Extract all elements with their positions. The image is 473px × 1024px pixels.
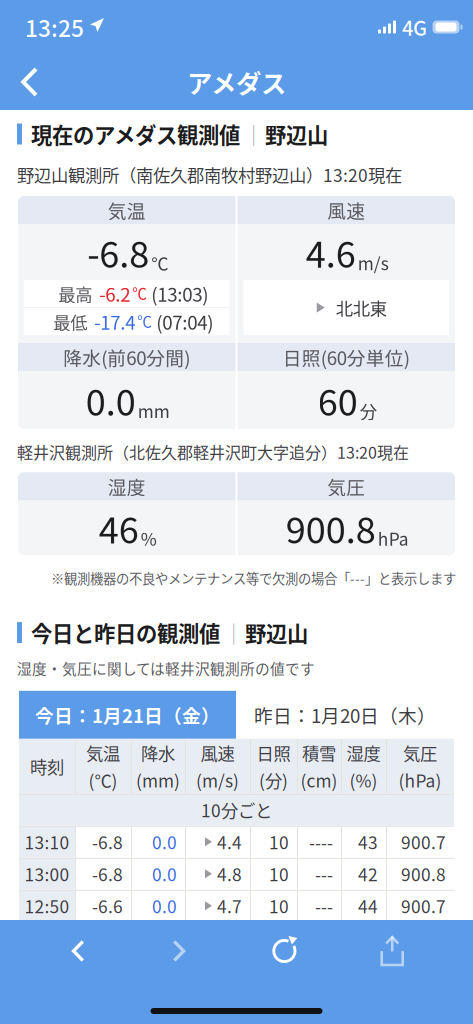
staticText: アメダス <box>187 64 286 100</box>
staticText: 13:25 <box>25 11 84 43</box>
staticText: (hPa) <box>398 767 441 792</box>
button[interactable]: 昨日：1月20日（木） <box>236 691 454 739</box>
staticText: 42 <box>358 861 378 886</box>
staticText: 野辺山 <box>245 617 308 648</box>
staticText: (13:03) <box>151 280 208 307</box>
staticText: 日照(60分単位) <box>283 344 410 371</box>
staticText: 4.7 <box>217 893 242 918</box>
staticText: 風速 <box>327 197 365 224</box>
staticText: (07:04) <box>156 308 213 335</box>
staticText: ℃ <box>151 250 168 275</box>
staticText: 気圧 <box>327 473 365 500</box>
staticText: mm <box>138 398 170 423</box>
staticText: 野辺山 <box>265 119 328 149</box>
staticText: 12:50 <box>24 893 69 918</box>
staticText: 野辺山観測所（南佐久郡南牧村野辺山）13:20現在 <box>17 162 402 187</box>
button[interactable]: 今日：1月21日（金） <box>19 691 236 739</box>
staticText: 13:10 <box>24 829 69 854</box>
staticText: 46 <box>99 502 139 554</box>
staticText: 今日と昨日の観測値 <box>31 617 220 648</box>
staticText: -6.8 <box>92 861 123 886</box>
staticText: 10 <box>269 829 289 854</box>
staticText: 0.0 <box>152 829 177 854</box>
staticText: ℃ <box>132 282 147 303</box>
staticText: (cm) <box>300 767 337 792</box>
staticText: -6.6 <box>92 893 123 918</box>
staticText: 気圧 <box>403 740 437 765</box>
staticText: 43 <box>358 829 378 854</box>
staticText: 最低 <box>53 309 87 334</box>
staticText: hPa <box>378 526 409 551</box>
staticText: 0.0 <box>86 374 136 426</box>
staticText: 0.0 <box>152 861 177 886</box>
staticText: 湿度 <box>346 740 380 765</box>
staticText: ※観測機器の不良やメンテナンス等で欠測の場合「---」と表示します <box>51 568 456 588</box>
staticText: -6.2 <box>99 280 130 307</box>
staticText: 44 <box>358 893 378 918</box>
button[interactable]: 進む <box>157 925 202 976</box>
staticText: 10 <box>269 893 289 918</box>
staticText: % <box>141 526 157 551</box>
staticText: -6.8 <box>87 226 149 278</box>
button[interactable]: 戻る <box>56 925 101 976</box>
staticText: 降水 <box>141 740 175 765</box>
staticText: 10 <box>269 861 289 886</box>
staticText: 積雪 <box>302 740 336 765</box>
staticText: 13:00 <box>24 861 69 886</box>
staticText: (mm) <box>136 767 180 792</box>
staticText: 湿度・気圧に関しては軽井沢観測所の値です <box>17 658 315 679</box>
staticText: 900.7 <box>401 829 446 854</box>
staticText: 最高 <box>58 281 92 306</box>
staticText: ---- <box>309 829 333 854</box>
staticText: 日照 <box>256 740 290 765</box>
staticText: 900.8 <box>286 502 376 554</box>
staticText: 900.7 <box>401 893 446 918</box>
staticText: m/s <box>358 250 389 275</box>
staticText: 4.8 <box>217 861 242 886</box>
staticText: 4G <box>402 12 427 41</box>
staticText: 4.4 <box>217 829 242 854</box>
staticText: (m/s) <box>196 767 239 792</box>
staticText: -6.8 <box>92 829 123 854</box>
staticText: 60 <box>318 374 358 426</box>
staticText: 湿度 <box>108 473 146 500</box>
staticText: 気温 <box>86 740 120 765</box>
staticText: (分) <box>259 767 288 792</box>
staticText: 北北東 <box>336 295 387 320</box>
staticText: 昨日：1月20日（木） <box>254 701 436 728</box>
staticText: ｜ <box>223 617 244 648</box>
button[interactable]: 共有 <box>367 922 417 980</box>
button[interactable]: 戻る <box>0 56 61 108</box>
staticText: -17.4 <box>94 308 135 335</box>
staticText: 風速 <box>200 740 234 765</box>
button[interactable]: 再読み込み <box>257 924 311 978</box>
staticText: ｜ <box>243 119 264 149</box>
staticText: 降水(前60分間) <box>63 344 190 371</box>
staticText: 900.8 <box>401 861 446 886</box>
staticText: 10分ごと <box>201 797 272 822</box>
staticText: 時刻 <box>30 754 64 779</box>
staticText: ℃ <box>137 310 152 331</box>
staticText: (℃) <box>88 767 117 792</box>
staticText: 軽井沢観測所（北佐久郡軽井沢町大字追分）13:20現在 <box>17 440 409 463</box>
staticText: --- <box>315 861 333 886</box>
staticText: 4.6 <box>306 226 356 278</box>
staticText: (%) <box>349 767 377 792</box>
staticText: 今日：1月21日（金） <box>35 701 220 728</box>
staticText: --- <box>315 893 333 918</box>
staticText: 分 <box>360 398 377 423</box>
staticText: 気温 <box>108 197 146 224</box>
staticText: 0.0 <box>152 893 177 918</box>
staticText: 現在のアメダス観測値 <box>31 119 240 149</box>
